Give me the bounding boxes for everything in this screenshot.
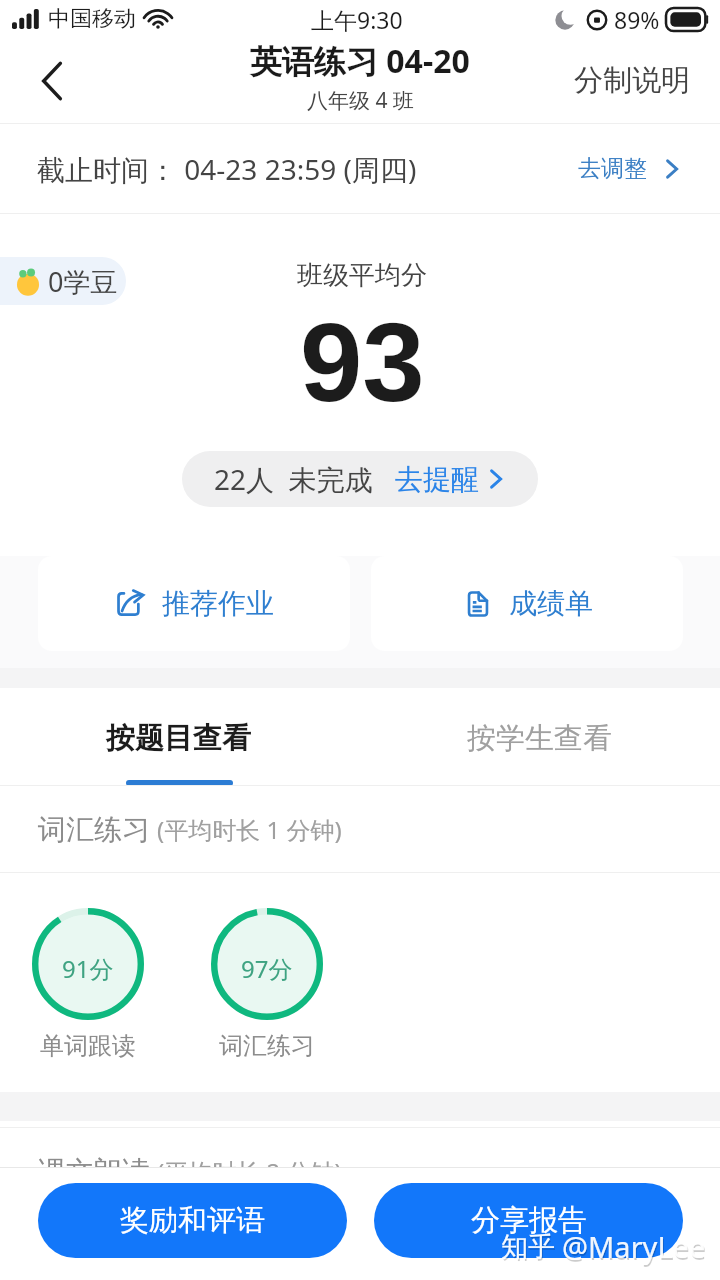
button[interactable]: 按题目查看 [0, 688, 360, 785]
staticText: 按题目查看 [106, 720, 251, 757]
button[interactable]: 成绩单 [371, 556, 683, 651]
staticText: 单词跟读 [40, 1031, 136, 1061]
staticText: 知乎 [501, 1230, 555, 1264]
staticText: 成绩单 [509, 586, 593, 621]
staticText: 中国移动 [48, 5, 136, 33]
staticText: 91分 [62, 952, 114, 985]
button[interactable]: 推荐作业 [38, 556, 350, 651]
staticText: 推荐作业 [162, 586, 274, 621]
staticText: 截止时间： 04-23 23:59 (周四) [37, 150, 417, 188]
button[interactable]: 去调整 [578, 154, 720, 183]
staticText: 去提醒 [395, 462, 479, 497]
staticText: @MaryLee [562, 1227, 706, 1266]
staticText: 93 [300, 300, 425, 425]
staticText: 0学豆 [48, 263, 118, 300]
staticText: @MaryLee [563, 1229, 707, 1268]
button[interactable]: Back [0, 38, 104, 123]
button[interactable]: 按学生查看 [360, 688, 720, 785]
staticText: 89% [614, 4, 660, 35]
staticText: 分享报告 [471, 1202, 587, 1239]
staticText: 知乎 [502, 1232, 556, 1266]
staticText: 分制说明 [574, 62, 690, 99]
button[interactable]: 0学豆 [0, 257, 126, 305]
staticText: 按学生查看 [467, 720, 612, 757]
button[interactable]: 分享报告 [374, 1183, 683, 1258]
button[interactable]: 22人 未完成 [182, 451, 538, 507]
staticText: 97分 [241, 952, 293, 985]
staticText: (平均时长 2 分钟) [157, 1155, 342, 1188]
staticText: 词汇练习 [219, 1031, 315, 1061]
staticText: 班级平均分 [297, 259, 427, 292]
staticText: 22人 未完成 [214, 460, 373, 498]
staticText: 八年级 4 班 [307, 86, 414, 115]
button[interactable]: 奖励和评语 [38, 1183, 347, 1258]
staticText: 去调整 [578, 154, 647, 183]
staticText: 词汇练习 [38, 812, 150, 847]
staticText: 奖励和评语 [120, 1202, 265, 1239]
staticText: 课文朗读 [38, 1154, 150, 1189]
staticText: 上午9:30 [311, 4, 403, 35]
staticText: 英语练习 04-20 [250, 39, 470, 83]
button[interactable]: 分制说明 [544, 44, 720, 117]
staticText: (平均时长 1 分钟) [157, 813, 342, 846]
